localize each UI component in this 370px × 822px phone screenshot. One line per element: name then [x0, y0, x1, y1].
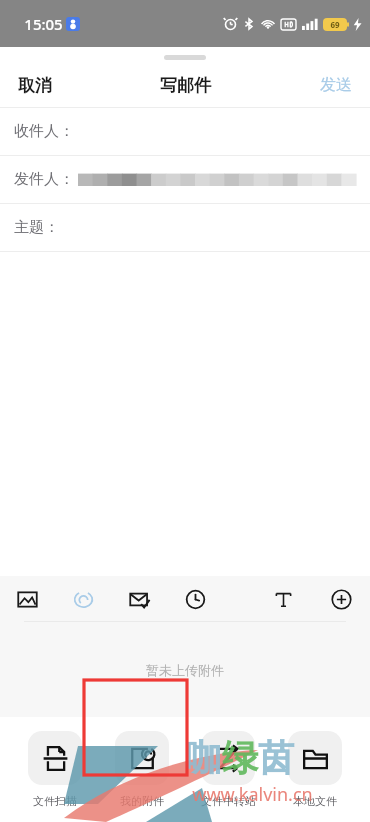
button[interactable]: Attachment: [68, 584, 98, 614]
staticText: 发件人：: [14, 170, 74, 189]
staticText: 主题：: [14, 218, 59, 237]
staticText: 我的附件: [120, 794, 164, 808]
staticText: www.kalvin.cn: [192, 782, 313, 807]
staticText: 暂未上传附件: [146, 662, 224, 678]
button[interactable]: Insert image: [12, 584, 42, 614]
button[interactable]: My attachments: [105, 731, 179, 808]
staticText: 咖: [186, 735, 222, 780]
button[interactable]: 取消: [0, 67, 70, 104]
staticText: 发送: [320, 75, 352, 95]
button[interactable]: Scan document: [18, 731, 92, 808]
button[interactable]: Mail receipt: [124, 584, 154, 614]
staticText: 文件中转站: [201, 794, 256, 808]
staticText: 文件扫描: [33, 794, 77, 808]
button[interactable]: Text format: [268, 584, 298, 614]
staticText: 绿: [222, 735, 258, 780]
staticText: 取消: [18, 75, 52, 96]
button[interactable]: 发送: [302, 67, 370, 103]
button[interactable]: 主题：: [0, 204, 370, 251]
button[interactable]: More: [326, 584, 356, 614]
staticText: 茵: [258, 735, 294, 780]
staticText: 本地文件: [293, 794, 337, 808]
staticText: 写邮件: [160, 75, 211, 96]
button[interactable]: 收件人：: [0, 108, 370, 155]
button[interactable]: Schedule send: [180, 584, 210, 614]
button[interactable]: Local files: [278, 731, 352, 808]
staticText: 收件人：: [14, 122, 74, 141]
button[interactable]: 发件人：: [0, 156, 370, 203]
staticText: 69: [330, 19, 340, 30]
staticText: 15:05: [24, 14, 63, 34]
button[interactable]: File transfer: [191, 731, 265, 808]
